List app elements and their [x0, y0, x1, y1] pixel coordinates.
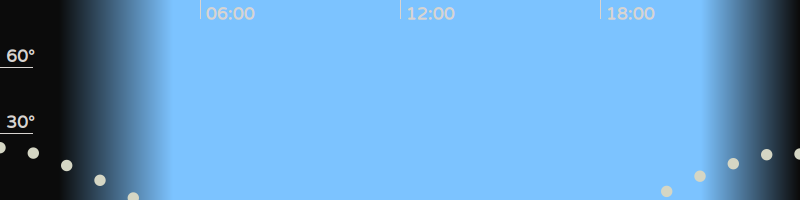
staticText: 30° — [6, 112, 35, 133]
staticText: 60° — [6, 46, 35, 67]
staticText: 18:00 — [605, 4, 654, 25]
staticText: 06:00 — [205, 4, 254, 25]
staticText: 12:00 — [405, 4, 454, 25]
